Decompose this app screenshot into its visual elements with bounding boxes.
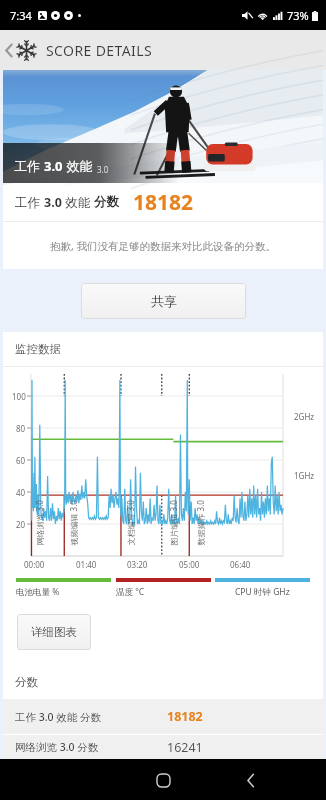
staticText: 网络浏览 3.0 分数	[15, 740, 99, 754]
staticText: 共享	[151, 293, 177, 309]
staticText: 3.0	[97, 164, 109, 175]
staticText: 电池电量 %	[16, 586, 60, 598]
staticText: 18182	[133, 188, 194, 217]
staticText: 工作	[14, 157, 44, 175]
staticText: 数据操作 3.0	[194, 499, 205, 545]
staticText: 详细图表	[31, 625, 77, 639]
staticText: SCORE DETAILS	[46, 41, 153, 60]
staticText: 01:40	[76, 559, 97, 570]
staticText: 视频编辑 3.0	[67, 499, 78, 545]
button[interactable]: 网络浏览 3.0 分数	[15, 735, 323, 759]
staticText: 06:40	[230, 559, 251, 570]
staticText: 73%	[287, 8, 309, 23]
staticText: 03:20	[127, 559, 148, 570]
staticText: 60	[16, 455, 26, 466]
staticText: 3.0	[44, 194, 62, 211]
staticText: 工作 3.0 效能 分数	[15, 710, 102, 724]
button[interactable]: 工作 3.0 效能 分数	[15, 699, 323, 734]
staticText: 分数	[15, 675, 38, 689]
staticText: 1GHz	[294, 470, 315, 481]
staticText: 效能	[62, 194, 94, 211]
staticText: 7:34	[10, 8, 32, 23]
staticText: 网络浏览 3.0	[33, 499, 44, 545]
button[interactable]: 详细图表	[17, 614, 91, 650]
staticText: 效能	[63, 157, 93, 175]
staticText: 监控数据	[15, 342, 61, 356]
staticText: 18182	[167, 708, 203, 725]
staticText: 3.0	[44, 157, 63, 175]
staticText: 抱歉, 我们没有足够的数据来对比此设备的分数。	[50, 239, 277, 253]
staticText: 2GHz	[294, 411, 315, 422]
staticText: 80	[16, 423, 26, 434]
staticText: CPU 时钟 GHz	[235, 586, 290, 598]
button[interactable]: Back	[4, 30, 36, 70]
staticText: 00:00	[24, 559, 45, 570]
staticText: 分数	[94, 194, 119, 210]
button[interactable]: Home	[143, 760, 183, 800]
staticText: 20	[16, 519, 26, 530]
staticText: 图片编辑 3.0	[167, 499, 178, 545]
staticText: 100	[12, 391, 26, 402]
staticText: 文档编写 3.0	[124, 499, 135, 545]
staticText: 温度 °C	[116, 586, 145, 598]
button[interactable]: Back	[230, 760, 270, 800]
staticText: 05:00	[179, 559, 200, 570]
staticText: 16241	[167, 739, 203, 756]
staticText: 工作	[15, 194, 44, 211]
staticText: 40	[16, 487, 26, 498]
button[interactable]: 共享	[81, 283, 246, 319]
